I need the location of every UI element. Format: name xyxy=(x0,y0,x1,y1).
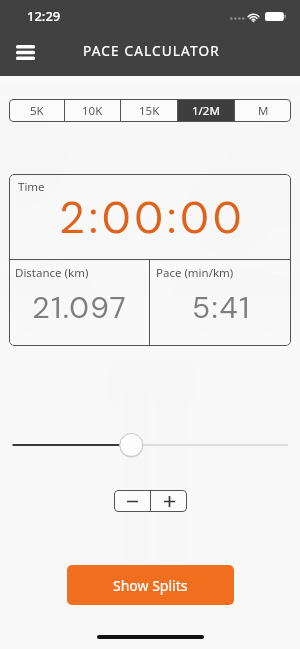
staticText: Pace (min/km) xyxy=(156,265,234,281)
button[interactable]: Increase xyxy=(151,490,187,512)
staticText: 21.097 xyxy=(32,288,128,327)
button[interactable]: 10K xyxy=(65,99,120,122)
staticText: 5K xyxy=(30,103,44,119)
staticText: Time xyxy=(18,179,45,195)
button[interactable]: Menu xyxy=(6,33,44,71)
button[interactable]: Show Splits xyxy=(67,565,234,605)
staticText: 2:00:00 xyxy=(59,189,246,246)
staticText: Show Splits xyxy=(113,576,188,595)
staticText: 15K xyxy=(139,103,160,119)
staticText: Distance (km) xyxy=(15,265,89,281)
staticText: 10K xyxy=(82,103,103,119)
button[interactable]: Decrease xyxy=(114,490,150,512)
button[interactable]: 15K xyxy=(121,99,177,122)
staticText: 1/2M xyxy=(192,103,220,119)
button[interactable]: 1/2M xyxy=(178,99,234,122)
button[interactable]: Adjust value xyxy=(0,432,300,458)
staticText: PACE CALCULATOR xyxy=(83,41,220,60)
button[interactable]: M xyxy=(235,99,291,122)
staticText: 12:29 xyxy=(27,7,61,25)
button[interactable]: 5K xyxy=(9,99,64,122)
staticText: M xyxy=(258,103,269,119)
staticText: 5:41 xyxy=(192,288,251,327)
